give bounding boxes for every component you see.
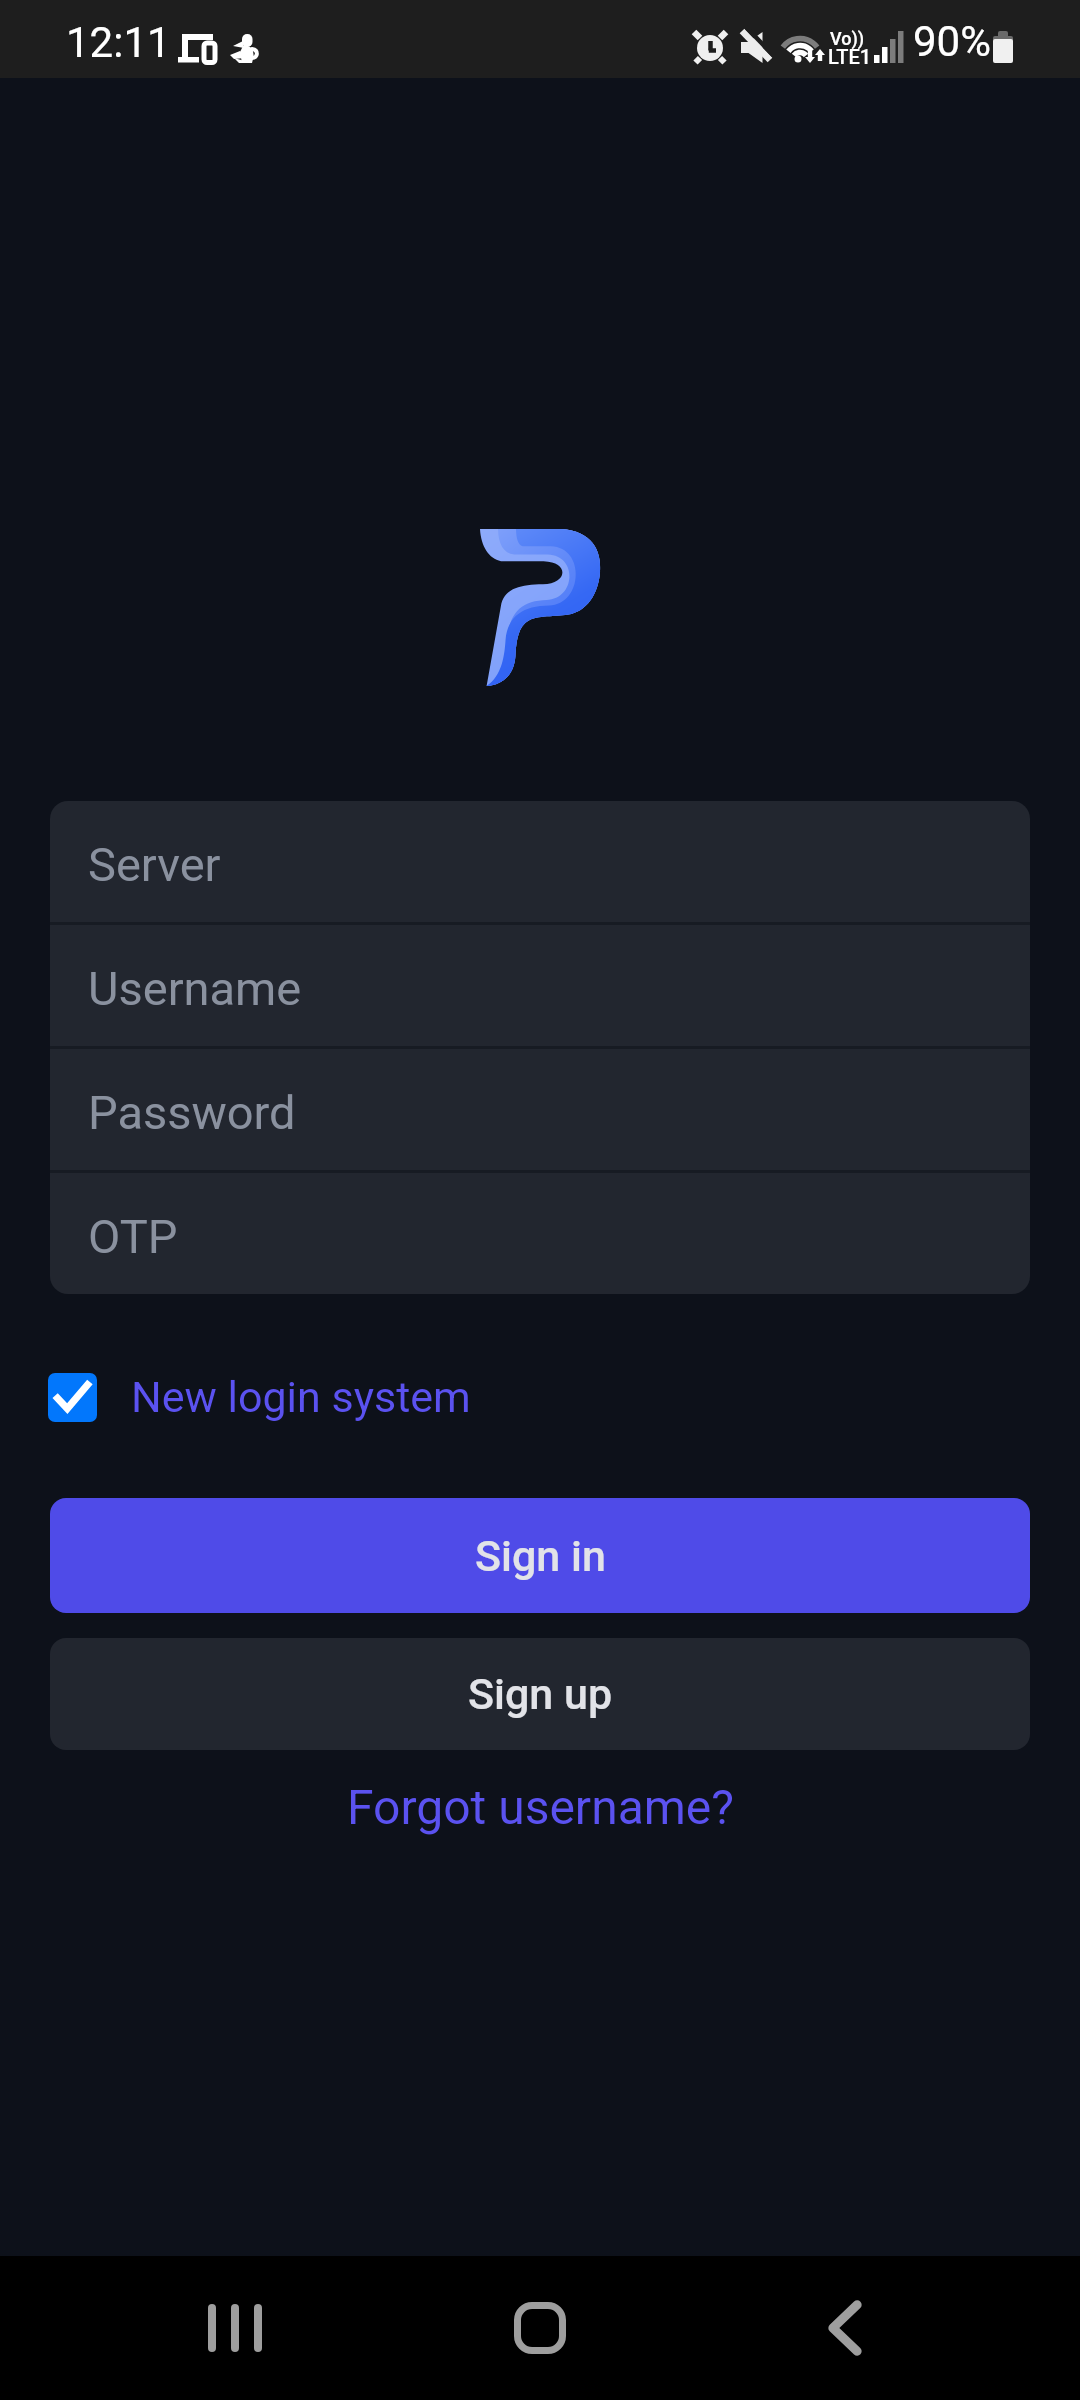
- button[interactable]: Sign up: [50, 1638, 1030, 1750]
- staticText: 12:11: [66, 18, 171, 67]
- staticText: New login system: [131, 1372, 471, 1422]
- staticText: Sign up: [468, 1669, 613, 1719]
- button[interactable]: Home: [440, 2256, 640, 2400]
- staticText: Forgot username?: [347, 1779, 734, 1835]
- button[interactable]: OTP: [50, 1173, 1030, 1294]
- button[interactable]: Back: [745, 2256, 945, 2400]
- staticText: Password: [88, 1085, 296, 1140]
- staticText: Username: [88, 961, 302, 1016]
- staticText: 90%: [913, 17, 991, 66]
- button[interactable]: Server: [50, 801, 1030, 922]
- button[interactable]: Recent apps: [135, 2256, 335, 2400]
- staticText: Server: [88, 837, 221, 892]
- staticText: LTE1: [828, 45, 872, 68]
- staticText: Vo)): [830, 28, 865, 49]
- button[interactable]: Username: [50, 925, 1030, 1046]
- staticText: OTP: [88, 1209, 178, 1264]
- button[interactable]: New login system: [48, 1372, 1032, 1422]
- button[interactable]: Password: [50, 1049, 1030, 1170]
- button[interactable]: Sign in: [50, 1498, 1030, 1613]
- button[interactable]: Forgot username?: [327, 1763, 754, 1851]
- staticText: Sign in: [475, 1531, 606, 1581]
